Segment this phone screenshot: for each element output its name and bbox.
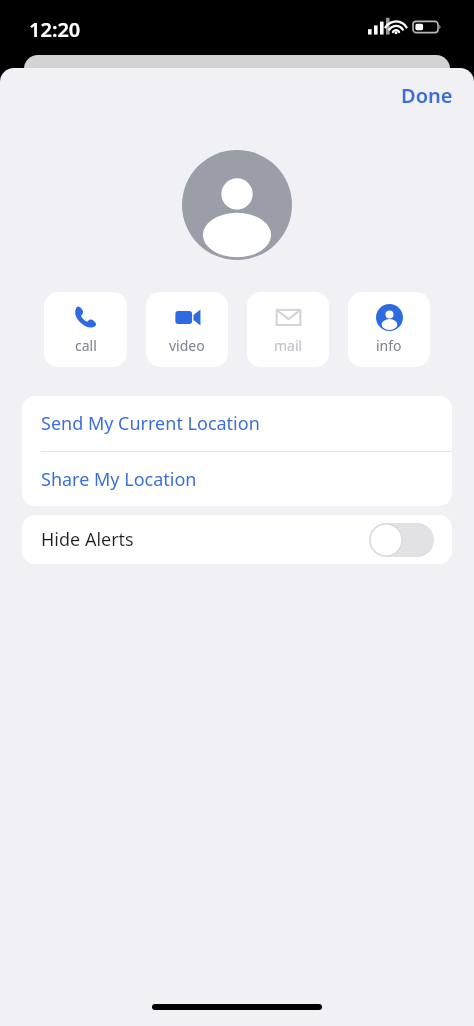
staticText: call — [75, 336, 97, 355]
button[interactable]: call — [44, 292, 127, 367]
button[interactable]: mail — [247, 292, 329, 367]
staticText: Share My Location — [41, 467, 197, 492]
staticText: mail — [274, 336, 303, 355]
staticText: video — [169, 336, 205, 355]
button[interactable]: info — [348, 292, 430, 367]
staticText: info — [376, 336, 402, 355]
staticText: 12:20 — [29, 16, 81, 43]
other: Hide Alerts toggle — [369, 523, 434, 557]
button[interactable]: Done — [380, 68, 474, 123]
button[interactable]: Send My Current Location — [22, 396, 452, 451]
button[interactable]: Contact photo — [182, 150, 292, 260]
button[interactable]: video — [146, 292, 228, 367]
button[interactable]: Share My Location — [22, 452, 452, 506]
staticText: Done — [401, 82, 453, 109]
button[interactable]: Hide Alerts — [22, 515, 452, 564]
staticText: Send My Current Location — [41, 411, 260, 436]
staticText: Hide Alerts — [41, 527, 134, 552]
